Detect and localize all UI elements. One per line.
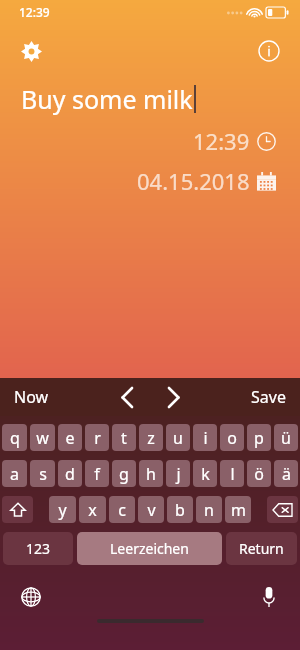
staticText: a (10, 463, 19, 485)
button[interactable]: Dictate (252, 580, 286, 614)
staticText: c (118, 499, 126, 521)
staticText: e (65, 427, 75, 449)
staticText: h (146, 463, 156, 485)
button[interactable]: g (112, 460, 136, 487)
staticText: ä (282, 463, 291, 485)
button[interactable]: Shift (2, 496, 33, 523)
button[interactable]: m (225, 496, 251, 523)
button[interactable]: Leerzeichen (77, 532, 222, 565)
button[interactable]: Return (226, 532, 297, 565)
button[interactable]: f (85, 460, 109, 487)
button[interactable]: Save (245, 382, 292, 412)
staticText: Return (239, 539, 284, 558)
button[interactable]: x (79, 496, 106, 523)
button[interactable]: Settings (14, 34, 48, 68)
button[interactable]: h (139, 460, 163, 487)
button[interactable]: ö (247, 460, 271, 487)
staticText: x (88, 499, 97, 521)
staticText: o (227, 427, 237, 449)
staticText: Now (14, 386, 49, 408)
button[interactable]: w (30, 424, 55, 451)
button[interactable]: 04.15.2018 (0, 166, 300, 196)
staticText: r (94, 427, 101, 449)
button[interactable]: Now (8, 382, 55, 412)
staticText: j (176, 463, 181, 485)
button[interactable]: ä (274, 460, 298, 487)
staticText: i (203, 427, 208, 449)
button[interactable]: r (85, 424, 109, 451)
staticText: ü (281, 427, 291, 449)
staticText: s (39, 463, 47, 485)
button[interactable]: p (247, 424, 271, 451)
button[interactable]: k (193, 460, 217, 487)
staticText: 123 (26, 539, 51, 558)
staticText: f (94, 463, 100, 485)
staticText: d (65, 463, 75, 485)
button[interactable]: j (166, 460, 190, 487)
button[interactable]: Switch keyboard (14, 580, 48, 614)
button[interactable]: e (58, 424, 82, 451)
staticText: ö (254, 463, 264, 485)
staticText: u (173, 427, 183, 449)
staticText: 12:39 (193, 126, 250, 156)
staticText: m (231, 499, 246, 521)
button[interactable]: a (2, 460, 27, 487)
staticText: k (201, 463, 210, 485)
button[interactable]: ü (274, 424, 298, 451)
button[interactable]: c (109, 496, 135, 523)
button[interactable]: u (166, 424, 190, 451)
staticText: p (254, 427, 264, 449)
staticText: n (204, 499, 214, 521)
button[interactable]: d (58, 460, 82, 487)
staticText: l (230, 463, 235, 485)
staticText: Save (251, 386, 286, 408)
button[interactable]: Previous (110, 380, 144, 414)
button[interactable]: q (2, 424, 27, 451)
staticText: z (147, 427, 155, 449)
button[interactable]: b (167, 496, 193, 523)
button[interactable]: i (193, 424, 217, 451)
staticText: v (147, 499, 156, 521)
button[interactable]: y (49, 496, 76, 523)
button[interactable]: t (112, 424, 136, 451)
staticText: y (58, 499, 67, 521)
staticText: q (10, 427, 20, 449)
button[interactable]: Backspace (267, 496, 298, 523)
button[interactable]: 123 (3, 532, 73, 565)
button[interactable]: z (139, 424, 163, 451)
button[interactable]: n (196, 496, 222, 523)
button[interactable]: 12:39 (0, 126, 300, 156)
button[interactable]: Next (156, 380, 190, 414)
button[interactable]: Info (252, 34, 286, 68)
staticText: t (121, 427, 127, 449)
staticText: w (36, 427, 49, 449)
button[interactable]: o (220, 424, 244, 451)
staticText: Buy some milk (21, 82, 193, 116)
staticText: Leerzeichen (110, 539, 189, 558)
staticText: g (119, 463, 129, 485)
staticText: 04.15.2018 (137, 166, 250, 196)
staticText: b (175, 499, 185, 521)
button[interactable]: l (220, 460, 244, 487)
staticText: 12:39 (19, 4, 50, 20)
button[interactable]: s (30, 460, 55, 487)
button[interactable]: v (138, 496, 164, 523)
